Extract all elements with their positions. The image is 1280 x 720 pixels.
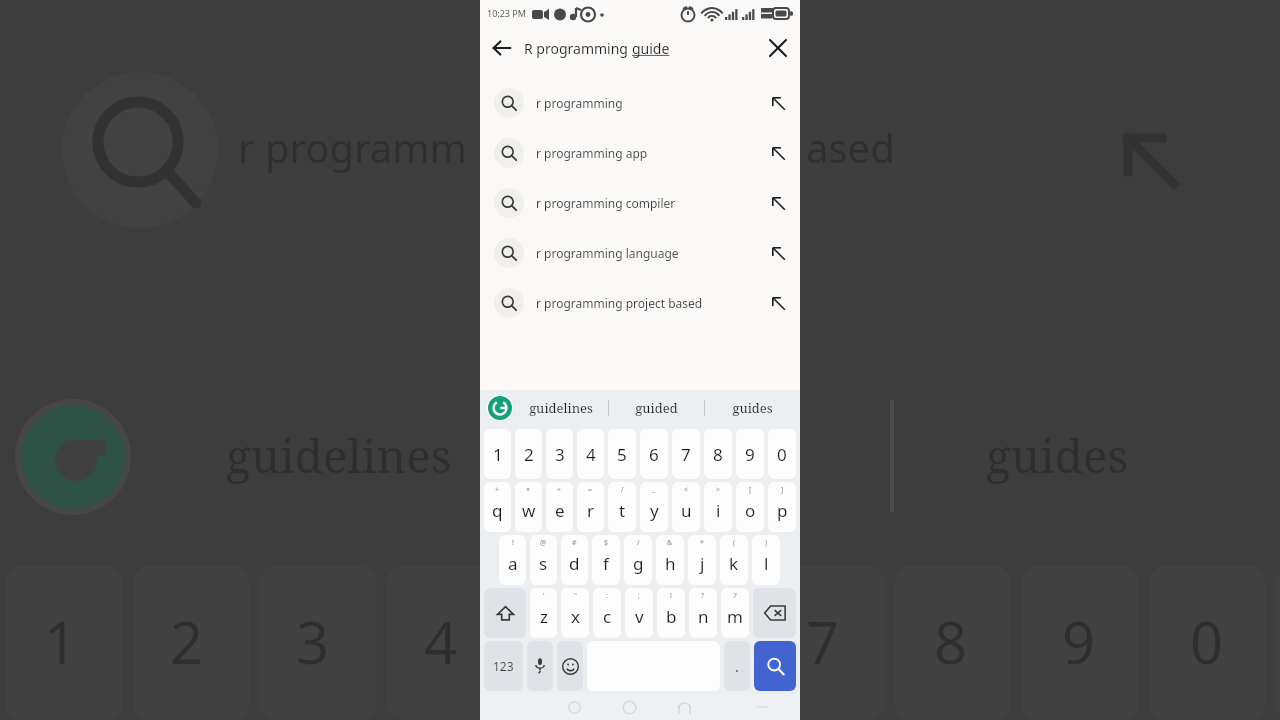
button[interactable]: guidelines <box>513 390 608 426</box>
staticText: 10:23 PM <box>487 7 526 19</box>
button[interactable] <box>577 482 604 532</box>
button[interactable] <box>656 535 684 585</box>
button[interactable] <box>768 482 796 532</box>
button[interactable] <box>672 482 700 532</box>
staticText: = <box>588 485 593 495</box>
button[interactable]: R programming <box>524 26 756 70</box>
staticText: 4 <box>586 443 596 466</box>
staticText: h <box>665 552 676 575</box>
staticText: x <box>571 605 580 628</box>
staticText: i <box>716 499 721 522</box>
staticText: n <box>698 605 709 628</box>
button[interactable]: Numbers <box>484 641 523 691</box>
staticText: 4 <box>424 602 458 681</box>
button[interactable]: guides <box>705 390 800 426</box>
staticText: ÷ <box>557 485 562 495</box>
button[interactable]: . <box>724 641 750 691</box>
staticText: + <box>495 485 500 495</box>
button[interactable]: Search <box>754 641 796 691</box>
staticText: . <box>735 656 740 676</box>
staticText: < <box>684 485 689 495</box>
button[interactable] <box>625 588 653 638</box>
staticText: guides <box>986 424 1129 487</box>
button[interactable]: Clear search <box>756 26 800 70</box>
staticText: ? <box>701 591 705 601</box>
button[interactable]: Back <box>480 26 524 70</box>
button[interactable] <box>499 535 526 585</box>
staticText: 0 <box>1190 602 1224 681</box>
button[interactable]: Backspace <box>753 588 796 638</box>
button[interactable]: Grammarly <box>487 395 513 421</box>
button[interactable] <box>515 482 542 532</box>
button[interactable] <box>561 588 589 638</box>
button[interactable] <box>689 588 717 638</box>
staticText: b <box>666 605 677 628</box>
staticText: l <box>764 552 769 575</box>
staticText: 1 <box>44 602 78 681</box>
staticText: / <box>621 485 624 495</box>
button[interactable]: Shift <box>484 588 526 638</box>
button[interactable]: Recents <box>547 694 602 720</box>
button[interactable] <box>546 482 573 532</box>
staticText: 2 <box>524 443 534 466</box>
button[interactable]: r programming project based <box>480 278 800 328</box>
button[interactable]: r programming <box>480 78 800 128</box>
button[interactable] <box>657 588 685 638</box>
button[interactable]: 0 <box>768 429 796 479</box>
staticText: × <box>526 485 531 495</box>
button[interactable] <box>608 482 636 532</box>
button[interactable]: Home <box>602 694 657 720</box>
staticText: / <box>637 538 640 548</box>
staticText: r programming app <box>536 145 771 161</box>
staticText: r programming language <box>536 245 771 261</box>
button[interactable] <box>561 535 588 585</box>
button[interactable] <box>720 535 748 585</box>
button[interactable] <box>530 535 557 585</box>
button[interactable]: 3 <box>546 429 573 479</box>
button[interactable] <box>640 482 668 532</box>
button[interactable] <box>593 588 621 638</box>
staticText: j <box>700 552 705 575</box>
button[interactable]: Voice input <box>527 641 553 691</box>
button[interactable]: 8 <box>704 429 732 479</box>
button[interactable] <box>592 535 620 585</box>
staticText: a <box>508 552 518 575</box>
button[interactable]: 5 <box>608 429 636 479</box>
staticText: ) <box>765 538 768 548</box>
button[interactable] <box>530 588 557 638</box>
staticText: # <box>572 538 577 548</box>
button[interactable] <box>624 535 652 585</box>
staticText: r <box>587 499 595 522</box>
button[interactable] <box>752 535 780 585</box>
button[interactable]: 1 <box>484 429 511 479</box>
staticText: r programming <box>536 95 771 111</box>
staticText: ' <box>543 591 545 601</box>
button[interactable]: 9 <box>736 429 764 479</box>
staticText: _ <box>652 485 656 495</box>
button[interactable]: r programming app <box>480 128 800 178</box>
button[interactable]: guided <box>609 390 704 426</box>
button[interactable]: r programming language <box>480 228 800 278</box>
staticText: > <box>716 485 721 495</box>
staticText: : <box>606 591 608 601</box>
button[interactable]: r programming compiler <box>480 178 800 228</box>
staticText: * <box>700 538 704 548</box>
button[interactable]: 2 <box>515 429 542 479</box>
staticText: o <box>745 499 756 522</box>
staticText: ( <box>733 538 736 548</box>
button[interactable]: 6 <box>640 429 668 479</box>
button[interactable] <box>736 482 764 532</box>
button[interactable] <box>688 535 716 585</box>
staticText: guidelines <box>529 399 593 417</box>
button[interactable] <box>721 588 749 638</box>
button[interactable]: Emoji <box>557 641 583 691</box>
staticText: $ <box>604 538 609 548</box>
staticText: & <box>667 538 673 548</box>
button[interactable] <box>484 482 511 532</box>
button[interactable]: 7 <box>672 429 700 479</box>
button[interactable] <box>704 482 732 532</box>
button[interactable]: Back <box>657 694 712 720</box>
button[interactable]: 4 <box>577 429 604 479</box>
